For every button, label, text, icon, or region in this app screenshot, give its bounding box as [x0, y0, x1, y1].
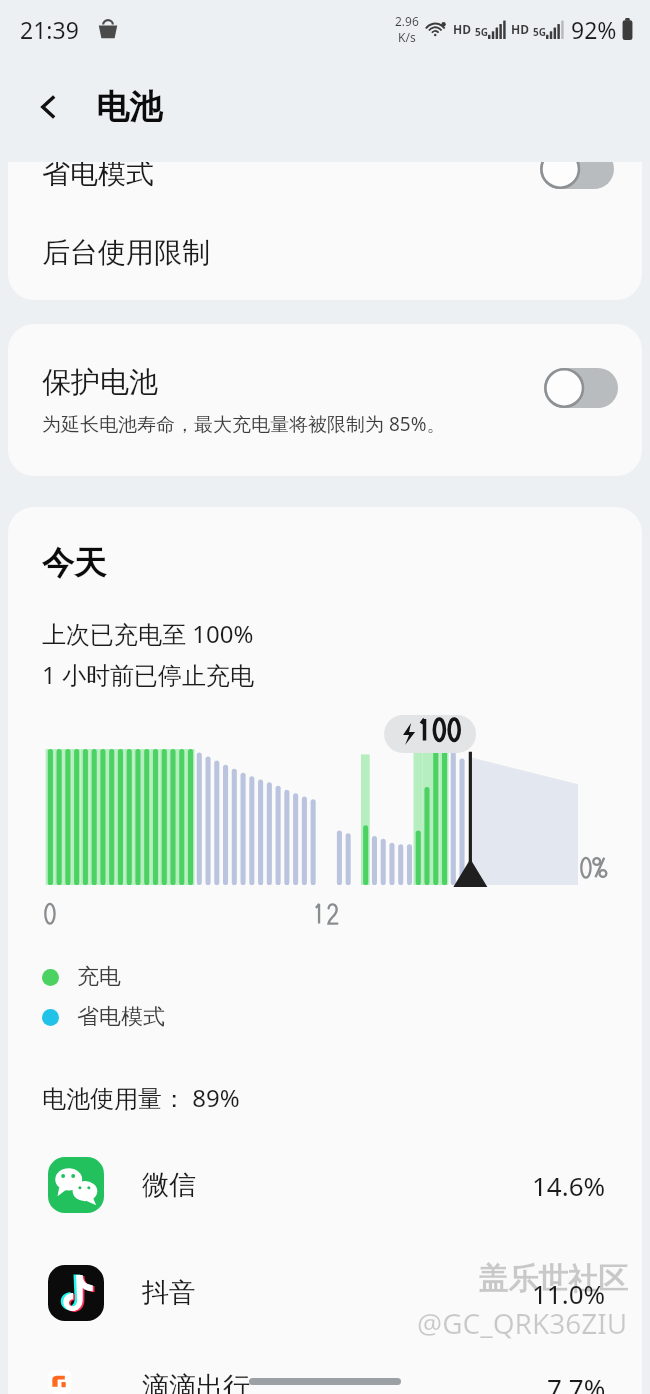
staticText: 92%: [571, 14, 617, 45]
staticText: @GC_QRK36ZIU: [417, 1304, 628, 1342]
staticText: 2.96: [395, 13, 419, 29]
button[interactable]: 抖音: [8, 1262, 642, 1324]
button[interactable]: 滴滴出行: [8, 1370, 642, 1394]
staticText: 保护电池: [42, 364, 158, 401]
staticText: 省电模式: [77, 1003, 165, 1031]
staticText: HD: [511, 21, 529, 37]
staticText: 后台使用限制: [42, 235, 210, 270]
staticText: HD: [453, 21, 471, 37]
staticText: 上次已充电至 100%: [42, 617, 254, 650]
staticText: K/s: [398, 29, 416, 45]
staticText: 滴滴出行: [142, 1370, 250, 1394]
staticText: 盖乐世社区: [478, 1260, 628, 1298]
staticText: 电池: [96, 86, 162, 128]
button[interactable]: 保护电池: [8, 324, 642, 476]
staticText: 11.0%: [532, 1276, 606, 1311]
staticText: 1 小时前已停止充电: [42, 658, 254, 691]
staticText: 5G: [533, 25, 546, 39]
button[interactable]: 微信: [8, 1154, 642, 1216]
staticText: 5G: [475, 25, 488, 39]
staticText: 电池使用量： 89%: [42, 1081, 240, 1114]
staticText: 今天: [42, 543, 106, 583]
staticText: 抖音: [142, 1276, 196, 1310]
button[interactable]: 省电模式: [8, 162, 642, 204]
button[interactable]: Back: [26, 84, 72, 130]
staticText: 7.7%: [547, 1370, 606, 1394]
staticText: 21:39: [20, 14, 79, 45]
staticText: 充电: [77, 963, 121, 991]
staticText: 14.6%: [532, 1168, 606, 1203]
button[interactable]: 后台使用限制: [8, 204, 642, 300]
staticText: 为延长电池寿命，最大充电量将被限制为 85%。: [42, 411, 446, 437]
staticText: 微信: [142, 1168, 196, 1202]
staticText: 省电模式: [42, 162, 154, 191]
